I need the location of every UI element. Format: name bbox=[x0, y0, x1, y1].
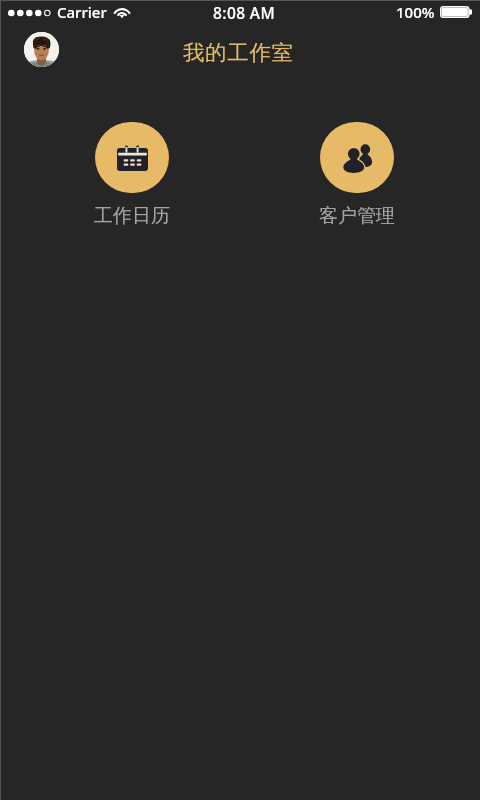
staticText: 100% bbox=[396, 2, 435, 22]
staticText: 我的工作室 bbox=[183, 39, 294, 66]
staticText: 工作日历 bbox=[94, 204, 170, 228]
button[interactable]: 客户管理 bbox=[319, 122, 395, 228]
staticText: Carrier bbox=[57, 2, 107, 22]
staticText: 客户管理 bbox=[319, 204, 395, 228]
staticText: 8:08 AM bbox=[213, 2, 276, 23]
button[interactable]: 工作日历 bbox=[94, 122, 170, 228]
button[interactable]: Profile bbox=[24, 32, 59, 67]
